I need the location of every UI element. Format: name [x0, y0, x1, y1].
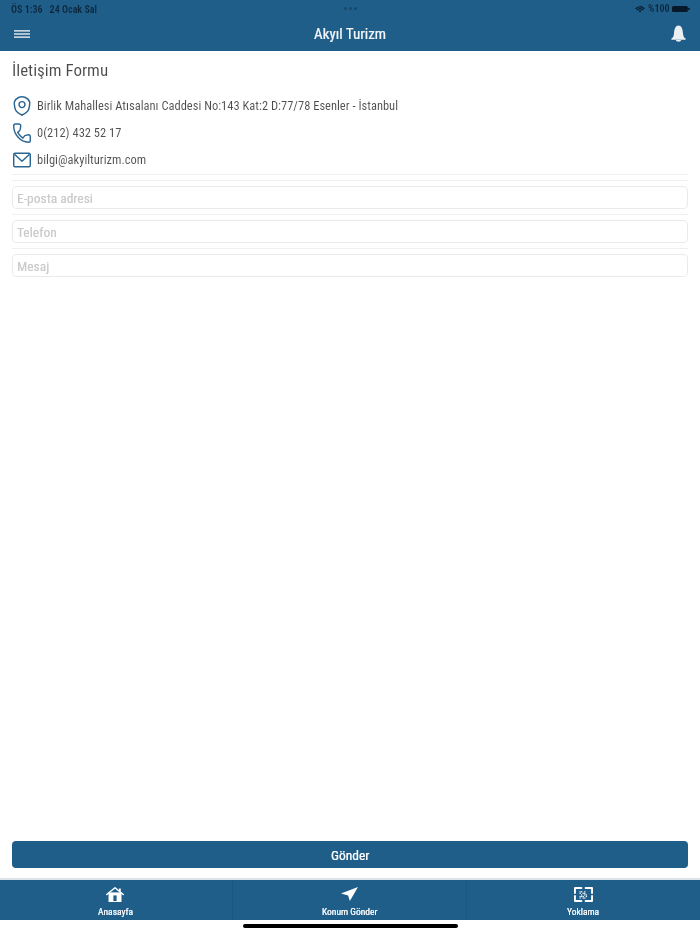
staticText: bilgi@akyilturizm.com: [37, 152, 147, 167]
button[interactable]: 0(212) 432 52 17: [0, 119, 700, 146]
button[interactable]: Birlik Mahallesi Atısalanı Caddesi No:14…: [0, 92, 700, 119]
staticText: Telefon: [17, 224, 57, 240]
button[interactable]: Notifications: [657, 18, 700, 51]
staticText: Birlik Mahallesi Atısalanı Caddesi No:14…: [37, 98, 399, 113]
button[interactable]: bilgi@akyilturizm.com: [0, 146, 700, 173]
button[interactable]: E-posta adresi: [12, 186, 688, 209]
staticText: Konum Gönder: [322, 906, 378, 917]
staticText: İletişim Formu: [12, 60, 109, 80]
button[interactable]: Konum Gönder: [233, 880, 466, 920]
staticText: Yoklama: [567, 906, 600, 917]
button[interactable]: Yoklama: [467, 880, 700, 920]
staticText: %100: [648, 3, 670, 15]
button[interactable]: Telefon: [12, 220, 688, 243]
staticText: Akyıl Turizm: [314, 25, 387, 43]
staticText: 0(212) 432 52 17: [37, 125, 122, 140]
button[interactable]: Open navigation menu: [0, 18, 43, 51]
staticText: ÖS 1:36 24 Ocak Sal: [11, 4, 98, 16]
button[interactable]: Mesaj: [12, 254, 688, 277]
button[interactable]: Gönder: [12, 841, 688, 868]
staticText: Gönder: [331, 847, 370, 863]
button[interactable]: Anasayfa: [0, 880, 232, 920]
staticText: Anasayfa: [98, 906, 134, 917]
staticText: Mesaj: [17, 258, 50, 274]
staticText: E-posta adresi: [17, 190, 93, 206]
